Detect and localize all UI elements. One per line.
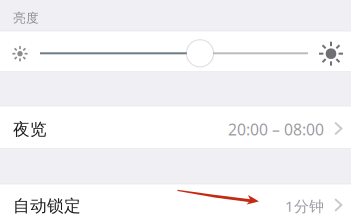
button[interactable]: 夜览 [0, 106, 351, 149]
staticText: 夜览 [13, 119, 47, 140]
staticText: 1分钟 [285, 196, 324, 216]
staticText: 亮度 [13, 10, 39, 26]
staticText: 自动锁定 [13, 195, 81, 216]
button[interactable]: 自动锁定 [0, 184, 351, 218]
staticText: 20:00 – 08:00 [228, 119, 324, 140]
